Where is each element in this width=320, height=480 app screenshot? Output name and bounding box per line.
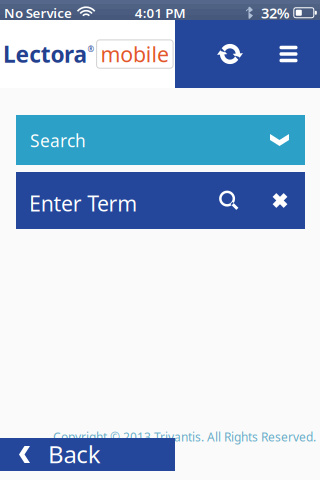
button[interactable]: Refresh xyxy=(185,20,275,88)
staticText: Back xyxy=(48,438,101,470)
button[interactable]: Search xyxy=(16,115,305,165)
button[interactable]: Back xyxy=(0,438,175,471)
staticText: No Service xyxy=(4,4,72,22)
staticText: mobile xyxy=(101,40,169,68)
staticText: Copyright © 2013 Trivantis. All Rights R… xyxy=(53,429,316,445)
button[interactable]: Search xyxy=(208,172,250,229)
staticText: Search xyxy=(30,129,86,152)
staticText: 4:01 PM xyxy=(135,4,185,22)
staticText: Enter Term xyxy=(29,189,137,217)
button[interactable]: Menu xyxy=(266,20,311,88)
staticText: Lectora xyxy=(3,39,88,69)
staticText: ® xyxy=(88,44,95,54)
button[interactable]: Clear term xyxy=(259,172,301,229)
staticText: 32% xyxy=(261,3,290,22)
